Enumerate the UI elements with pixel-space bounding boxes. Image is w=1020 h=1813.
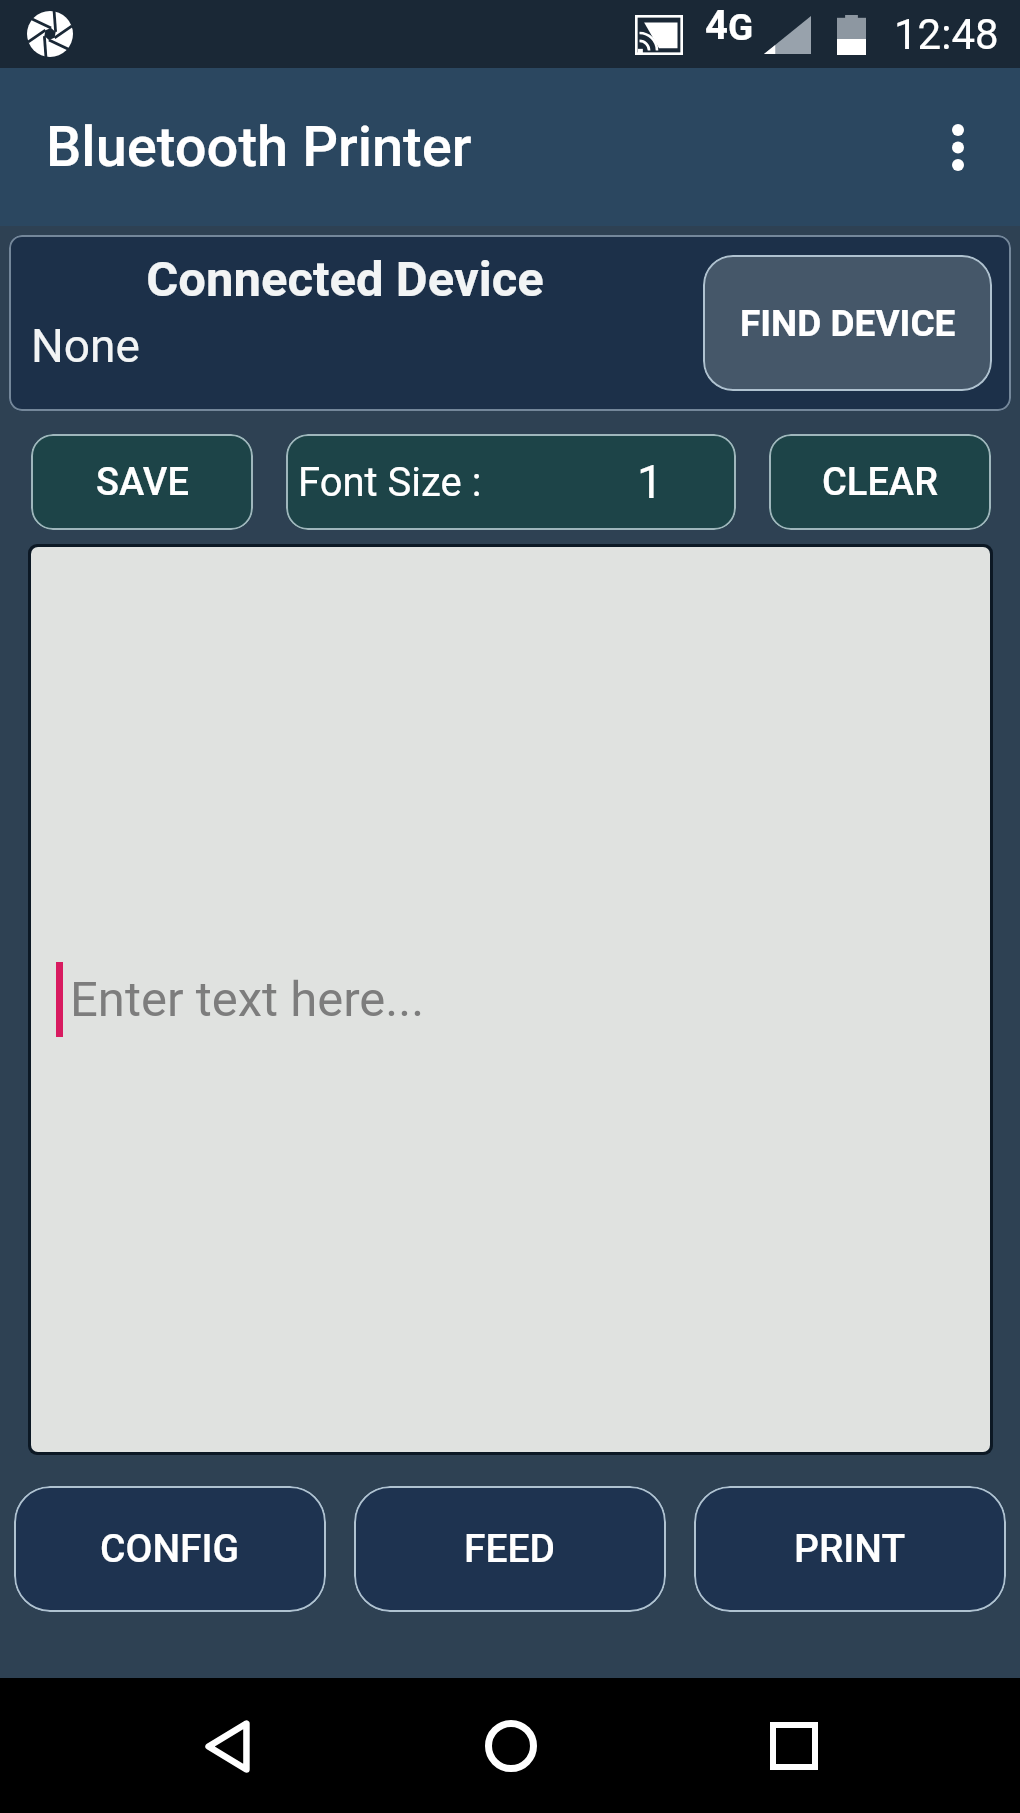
staticText: G <box>728 6 754 49</box>
staticText: Connected Device <box>9 251 681 308</box>
staticText: CLEAR <box>822 460 938 505</box>
staticText: 4 <box>705 2 728 49</box>
button[interactable]: Back <box>174 1693 280 1799</box>
button[interactable]: PRINT <box>694 1486 1006 1612</box>
button[interactable]: CONFIG <box>14 1486 326 1612</box>
staticText: SAVE <box>96 460 189 505</box>
button[interactable]: FEED <box>354 1486 666 1612</box>
staticText: CONFIG <box>100 1526 240 1572</box>
button[interactable]: Font Size : <box>286 434 736 530</box>
staticText: None <box>31 319 140 373</box>
button[interactable]: Home <box>458 1693 564 1799</box>
staticText: Bluetooth Printer <box>46 114 472 180</box>
staticText: PRINT <box>794 1526 906 1572</box>
button[interactable]: FIND DEVICE <box>703 255 992 391</box>
button[interactable]: Recents <box>741 1693 847 1799</box>
button[interactable]: More options <box>916 105 1000 189</box>
staticText: FIND DEVICE <box>740 302 956 345</box>
button[interactable]: SAVE <box>31 434 253 530</box>
staticText: FEED <box>464 1526 556 1572</box>
staticText: Enter text here... <box>70 971 425 1028</box>
staticText: 1 <box>637 455 663 509</box>
staticText: 12:48 <box>894 10 999 59</box>
button[interactable]: CLEAR <box>769 434 991 530</box>
staticText: Font Size : <box>298 459 482 506</box>
